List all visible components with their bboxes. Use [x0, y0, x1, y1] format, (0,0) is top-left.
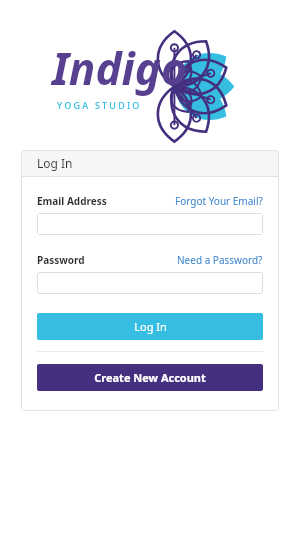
staticText: Log In: [134, 319, 167, 334]
staticText: Indigo: [52, 38, 187, 98]
staticText: Log In: [37, 155, 73, 171]
staticText: YOGA STUDIO: [57, 99, 142, 111]
staticText: Create New Account: [94, 370, 206, 385]
button[interactable]: Create New Account: [37, 364, 263, 391]
staticText: Forgot Your Email?: [175, 194, 263, 208]
staticText: Password: [37, 253, 85, 267]
button[interactable]: Log In: [37, 313, 263, 340]
button[interactable]: Need a Password?: [177, 253, 263, 267]
button[interactable]: Forgot Your Email?: [175, 194, 263, 208]
button[interactable]: [37, 213, 263, 235]
staticText: Need a Password?: [177, 253, 263, 267]
staticText: Email Address: [37, 194, 107, 208]
button[interactable]: [37, 272, 263, 294]
